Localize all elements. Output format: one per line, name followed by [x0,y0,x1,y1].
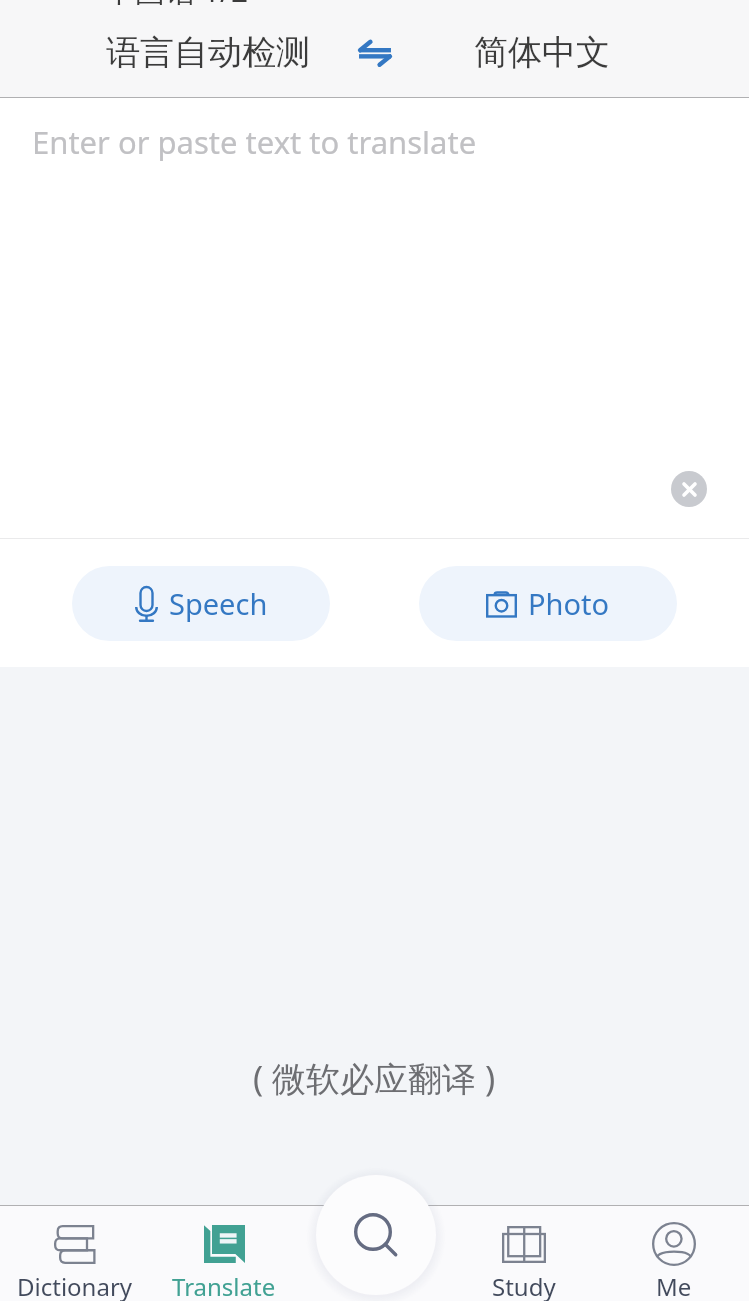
button[interactable]: Search [316,1175,436,1295]
button[interactable]: Photo [419,566,677,641]
staticText: Dictionary [17,1270,133,1301]
button[interactable]: 语言自动检测 [78,0,338,97]
staticText: Photo [528,584,610,623]
button[interactable]: Swap languages [345,0,405,97]
staticText: Speech [169,584,268,623]
button[interactable]: Speech [72,566,330,641]
button[interactable]: 简体中文 [412,0,672,97]
staticText: Me [656,1270,692,1301]
button[interactable]: Dictionary [0,1206,149,1301]
button[interactable]: Translate [149,1206,299,1301]
button[interactable]: Enter or paste text to translate [0,98,749,538]
button[interactable]: Me [599,1206,749,1301]
staticText: ( 微软必应翻译 ) [253,1055,496,1101]
button[interactable]: Study [449,1206,599,1301]
button[interactable]: Clear text [671,471,707,507]
staticText: Study [492,1270,556,1301]
staticText: Translate [172,1270,276,1301]
staticText: 语言自动检测 [106,31,310,74]
staticText: Enter or paste text to translate [32,121,477,163]
staticText: 简体中文 [474,31,610,74]
staticText: 中国话 1/2 [105,0,249,11]
